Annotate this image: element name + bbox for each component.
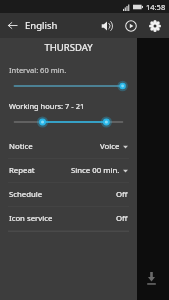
- staticText: 14:58: [146, 2, 166, 12]
- staticText: Notice: [9, 141, 33, 152]
- staticText: Repeat: [9, 165, 35, 176]
- staticText: Icon service: [9, 213, 53, 224]
- staticText: THURSDAY: [0, 41, 137, 54]
- button[interactable]: Play: [119, 14, 143, 38]
- button[interactable]: Repeat: [0, 159, 137, 182]
- staticText: Schedule: [9, 189, 43, 200]
- button[interactable]: Notice: [0, 135, 137, 158]
- button[interactable]: [9, 116, 128, 128]
- staticText: Working hours: 7 - 21: [9, 101, 85, 111]
- staticText: Off: [116, 213, 128, 224]
- staticText: Interval: 60 min.: [9, 65, 67, 75]
- button[interactable]: Volume: [95, 14, 119, 38]
- staticText: English: [25, 19, 58, 32]
- button[interactable]: Schedule: [0, 183, 137, 206]
- button[interactable]: Icon service: [0, 207, 137, 230]
- staticText: Since 00 min.: [71, 165, 120, 176]
- staticText: Off: [116, 189, 128, 200]
- button[interactable]: Back: [0, 13, 25, 38]
- button[interactable]: Download: [140, 267, 162, 289]
- button[interactable]: [9, 80, 128, 92]
- staticText: Voice: [100, 141, 120, 152]
- button[interactable]: Interval: 60 min.: [0, 65, 137, 92]
- button[interactable]: Settings: [143, 14, 167, 38]
- button[interactable]: Working hours: 7 - 21: [0, 101, 137, 128]
